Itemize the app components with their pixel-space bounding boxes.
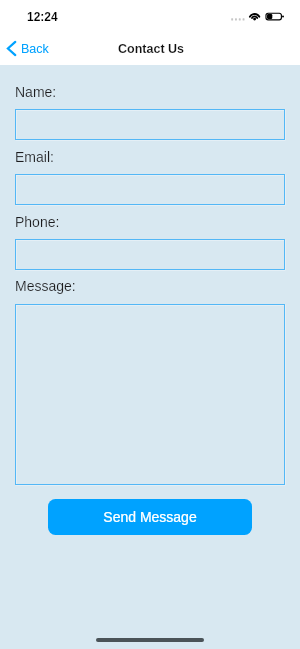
staticText: Contact Us bbox=[1, 42, 300, 56]
staticText: Message: bbox=[15, 278, 76, 294]
staticText: Back bbox=[21, 42, 49, 56]
other: Back bbox=[7, 41, 16, 56]
button[interactable] bbox=[15, 304, 285, 485]
staticText: Email: bbox=[15, 149, 54, 165]
staticText: Send Message bbox=[103, 509, 197, 525]
button[interactable]: Back bbox=[7, 39, 49, 59]
staticText: 12:24 bbox=[27, 10, 58, 23]
staticText: Phone: bbox=[15, 214, 60, 230]
button[interactable] bbox=[15, 174, 285, 205]
button[interactable] bbox=[15, 109, 285, 140]
staticText: Name: bbox=[15, 84, 57, 100]
button[interactable] bbox=[15, 239, 285, 270]
button[interactable]: Send Message bbox=[48, 499, 252, 535]
